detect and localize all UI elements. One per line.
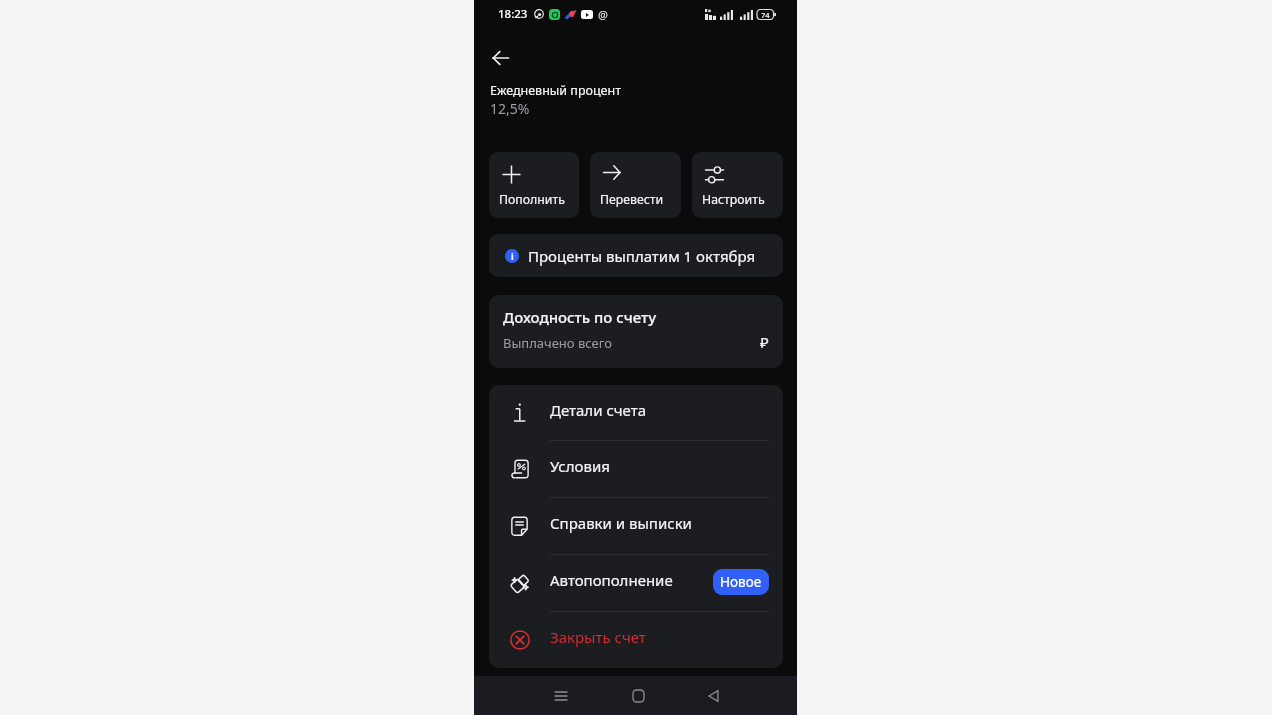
staticText: Перевести bbox=[600, 191, 664, 208]
button[interactable]: Закрыть счет bbox=[489, 612, 783, 668]
staticText: Условия bbox=[550, 456, 610, 476]
staticText: Закрыть счет bbox=[550, 627, 646, 647]
button[interactable]: Условия bbox=[489, 441, 783, 498]
staticText: Выплачено всего bbox=[503, 334, 613, 352]
button[interactable]: i bbox=[489, 234, 783, 277]
staticText: Настроить bbox=[702, 191, 765, 208]
staticText: Автопополнение bbox=[550, 570, 673, 590]
button[interactable]: Справки и выписки bbox=[489, 498, 783, 555]
staticText: i bbox=[511, 250, 514, 262]
staticText: 18:23 bbox=[498, 6, 528, 22]
button[interactable]: Перевести bbox=[590, 152, 681, 218]
button[interactable]: Пополнить bbox=[489, 152, 579, 218]
button[interactable]: Детали счета bbox=[489, 385, 783, 441]
staticText: ₽ bbox=[760, 332, 769, 352]
staticText: @ bbox=[598, 7, 608, 22]
staticText: Пополнить bbox=[499, 191, 565, 208]
staticText: Ежедневный процент bbox=[490, 82, 621, 99]
button[interactable]: Автопополнение bbox=[489, 555, 783, 612]
staticText: 12,5% bbox=[490, 99, 530, 118]
staticText: Детали счета bbox=[550, 400, 647, 420]
button[interactable]: Доходность по счету bbox=[489, 295, 783, 368]
button[interactable]: Back bbox=[694, 676, 732, 715]
staticText: Новое bbox=[720, 573, 762, 591]
button[interactable]: Настроить bbox=[692, 152, 783, 218]
staticText: Справки и выписки bbox=[550, 513, 692, 533]
staticText: 74 bbox=[761, 10, 770, 20]
staticText: Проценты выплатим 1 октября bbox=[528, 246, 756, 266]
button[interactable]: Home bbox=[619, 676, 657, 715]
button[interactable]: Back bbox=[485, 42, 516, 73]
staticText: Доходность по счету bbox=[503, 307, 657, 327]
button[interactable]: Recent apps bbox=[542, 676, 580, 715]
